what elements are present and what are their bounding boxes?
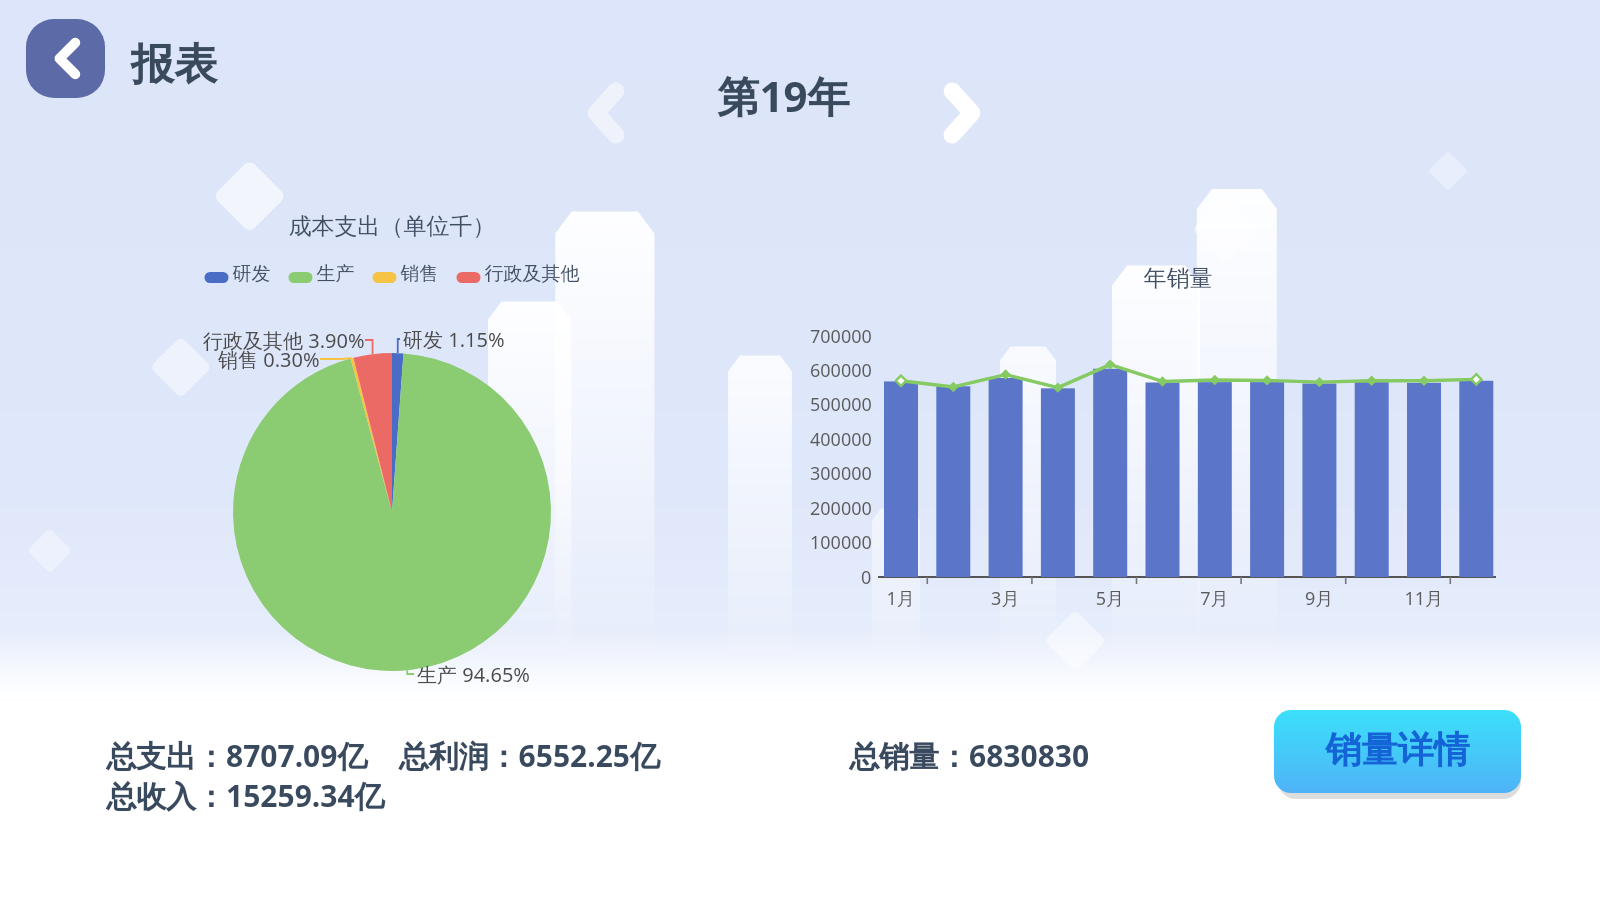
button[interactable] bbox=[1274, 710, 1521, 793]
button[interactable]: Previous year bbox=[578, 85, 634, 141]
button[interactable]: Next year bbox=[934, 85, 990, 141]
button[interactable]: Back bbox=[26, 19, 105, 98]
